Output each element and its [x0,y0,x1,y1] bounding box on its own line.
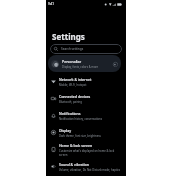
staticText: Display [59,128,72,133]
staticText: Bluetooth, pairing [59,100,82,104]
button[interactable]: More options [112,61,118,67]
staticText: Notification history, conversations [59,117,103,121]
staticText: Personalize [62,59,82,64]
staticText: Dark theme, font size, brightness [59,134,101,138]
staticText: Settings [52,31,85,42]
button[interactable]: Search settings [50,44,122,54]
button[interactable]: Personalize [48,55,121,72]
staticText: Connected devices [59,94,91,99]
button[interactable]: Sound & vibration [46,158,126,175]
staticText: 9:41 [48,2,54,6]
button[interactable]: Network & internet [46,73,126,90]
staticText: Sound & vibration [59,162,90,167]
button[interactable]: Home & lock screen [46,141,126,158]
staticText: Display, fonts, colors & more [62,65,99,69]
staticText: Search settings [61,47,84,51]
button[interactable]: Display [46,124,126,141]
staticText: Mobile, Wi-Fi, hotspot [59,83,87,87]
staticText: Network & internet [59,77,92,82]
staticText: Home & lock screen [59,143,93,148]
button[interactable]: Connected devices [46,90,126,107]
staticText: Volume, vibration, Do Not Disturb mode, … [59,168,121,172]
button[interactable]: Notifications [46,107,126,124]
staticText: Notifications [59,111,81,116]
staticText: Customize what's displayed on home & loc… [59,149,122,156]
